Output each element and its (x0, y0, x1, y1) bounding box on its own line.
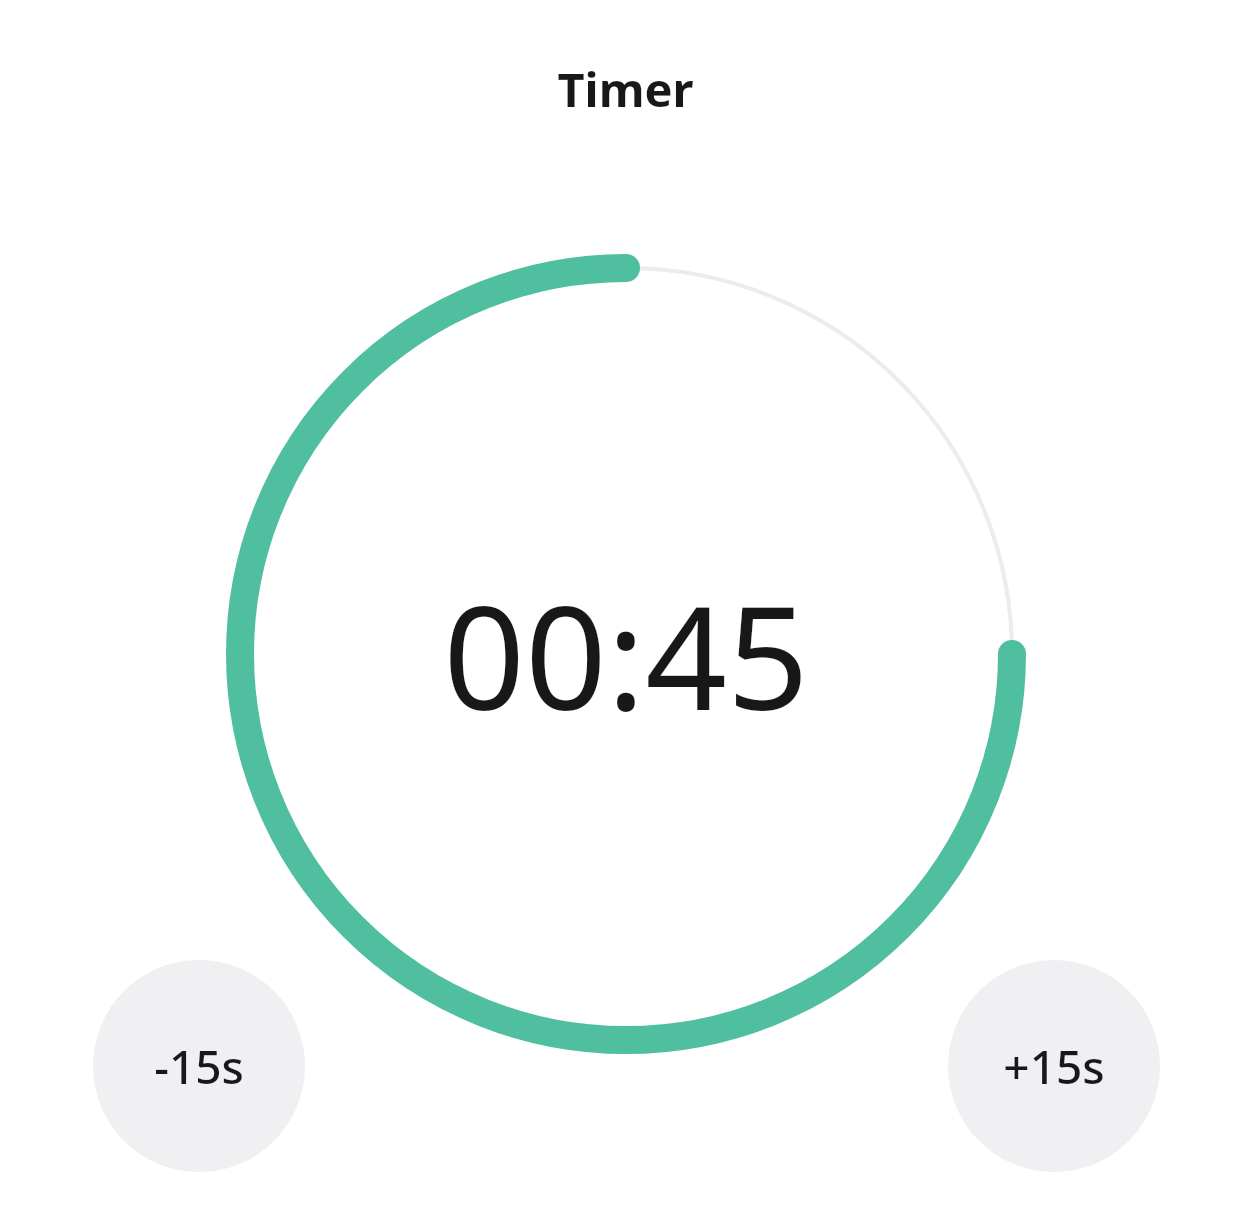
button[interactable]: +15s (948, 960, 1160, 1172)
staticText: +15s (1003, 1035, 1105, 1098)
staticText: 00:45 (443, 557, 809, 752)
button[interactable]: -15s (93, 960, 305, 1172)
staticText: Timer (557, 57, 694, 121)
staticText: -15s (154, 1035, 244, 1098)
